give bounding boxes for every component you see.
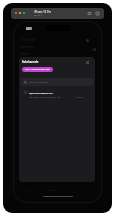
staticText: Search subchannels — [29, 81, 49, 84]
button[interactable]: Search subchannels — [21, 78, 94, 86]
staticText: iOS 18.6 — [34, 14, 43, 17]
staticText: Subchannels — [22, 60, 39, 64]
staticText: you created this chat as a draft cha... — [29, 96, 62, 99]
staticText: ONLY 1 SUBCHANNEL LEFT — [25, 68, 50, 71]
staticText: 2:02 AM — [76, 96, 84, 99]
button[interactable]: More options — [95, 11, 99, 15]
staticText: Camera Invite Feedback — [23, 188, 57, 191]
button[interactable]: ONLY 1 SUBCHANNEL LEFT — [22, 67, 53, 72]
staticText: iPhone 16 Pro — [34, 10, 52, 14]
staticText: abcd and adinsd.srh — [29, 91, 53, 94]
staticText: ‹ Portal Fam — [20, 38, 36, 42]
staticText: 2:03 — [26, 27, 32, 31]
staticText: Mindshark — [21, 45, 34, 49]
staticText: Music — [21, 52, 29, 56]
button[interactable]: abcd and adinsd.srh — [20, 88, 94, 101]
button[interactable]: Close — [84, 59, 90, 65]
button[interactable]: Screenshot — [87, 11, 91, 15]
